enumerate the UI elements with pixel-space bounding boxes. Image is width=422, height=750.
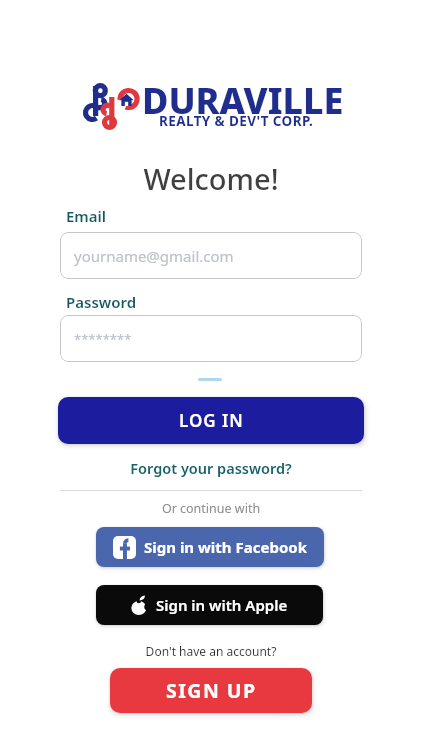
staticText: Sign in with Facebook [144,537,307,557]
staticText: DURAVILLE [142,76,344,125]
staticText: Or continue with [0,500,422,517]
staticText: Welcome! [0,159,422,198]
staticText: REALTY & DEV'T CORP. [159,112,314,130]
button[interactable]: LOG IN [58,397,364,444]
button[interactable]: Sign in with Apple [96,585,323,625]
staticText: Sign in with Apple [156,595,288,615]
staticText: Password [66,292,137,312]
staticText: LOG IN [179,409,244,432]
button[interactable]: ******** [60,315,362,362]
button[interactable]: yourname@gmail.com [60,232,362,279]
staticText: Email [66,206,107,226]
staticText: SIGN UP [166,677,257,704]
button[interactable]: SIGN UP [110,668,312,713]
button[interactable]: Forgot your password? [0,458,422,478]
staticText: Don't have an account? [0,643,422,659]
staticText: yourname@gmail.com [74,246,234,266]
staticText: ******** [74,330,132,348]
button[interactable]: Sign in with Facebook [96,527,324,567]
